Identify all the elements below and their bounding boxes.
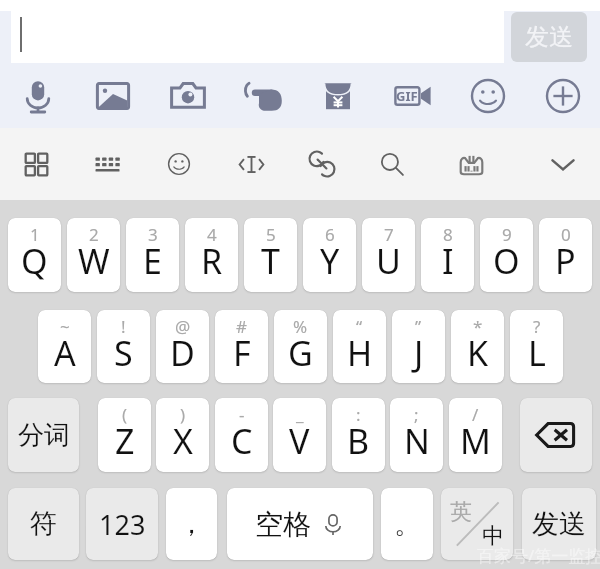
button[interactable]: @ — [156, 310, 209, 383]
staticText: @ — [175, 315, 191, 338]
staticText: 发送 — [532, 507, 586, 541]
button[interactable]: 2 — [67, 218, 120, 292]
button[interactable]: : — [332, 398, 385, 472]
staticText: 5 — [266, 223, 276, 246]
staticText: L — [528, 330, 546, 376]
button[interactable]: ， — [166, 488, 217, 560]
button[interactable]: 6 — [303, 218, 356, 292]
button[interactable]: ? — [510, 310, 563, 383]
button[interactable]: ) — [156, 398, 209, 472]
staticText: 3 — [148, 223, 158, 246]
button[interactable]: Shopping festival — [445, 128, 497, 200]
button[interactable]: 发送 — [511, 12, 587, 62]
staticText: B — [347, 418, 370, 464]
button[interactable]: 123 — [86, 488, 158, 560]
staticText: ; — [414, 403, 419, 426]
button[interactable]: 空格 — [227, 488, 373, 560]
button[interactable]: 7 — [362, 218, 415, 292]
staticText: 空格 — [255, 507, 311, 542]
staticText: Z — [115, 418, 135, 464]
staticText: 中 — [482, 522, 504, 550]
staticText: 7 — [384, 223, 394, 246]
button[interactable]: Switch language — [441, 488, 513, 560]
staticText: 123 — [99, 506, 146, 543]
staticText: 。 — [394, 507, 421, 541]
staticText: E — [143, 238, 162, 284]
button[interactable]: Photo — [75, 63, 150, 128]
staticText: “ — [356, 315, 363, 338]
button[interactable]: 1 — [8, 218, 61, 292]
button[interactable]: GIF — [375, 63, 450, 128]
button[interactable]: Emoji — [153, 128, 205, 200]
staticText: ~ — [60, 315, 70, 338]
staticText: 1 — [30, 223, 40, 246]
staticText: 6 — [325, 223, 335, 246]
button[interactable]: ( — [98, 398, 151, 472]
staticText: W — [78, 238, 110, 284]
button[interactable]: 符 — [8, 488, 79, 560]
button[interactable]: Attachment — [296, 128, 348, 200]
button[interactable]: Gesture — [225, 63, 300, 128]
staticText: H — [347, 330, 373, 376]
button[interactable]: ; — [390, 398, 443, 472]
button[interactable]: Red packet — [300, 63, 375, 128]
button[interactable]: Search — [366, 128, 418, 200]
button[interactable]: 9 — [480, 218, 533, 292]
button[interactable]: 发送 — [522, 488, 596, 560]
button[interactable]: 。 — [381, 488, 433, 560]
button[interactable]: Voice — [0, 63, 75, 128]
button[interactable]: Camera — [150, 63, 225, 128]
staticText: 8 — [443, 223, 453, 246]
button[interactable]: More — [525, 63, 600, 128]
staticText: _ — [296, 403, 304, 426]
button[interactable]: Emoji — [450, 63, 525, 128]
staticText: Q — [21, 238, 48, 284]
button[interactable]: Keyboard layout — [81, 128, 133, 200]
staticText: X — [173, 418, 193, 464]
button[interactable]: * — [451, 310, 504, 383]
staticText: 发送 — [525, 22, 573, 52]
button[interactable]: Apps — [10, 128, 62, 200]
staticText: 4 — [207, 223, 217, 246]
button[interactable]: ~ — [38, 310, 91, 383]
button[interactable]: 3 — [126, 218, 179, 292]
staticText: * — [473, 315, 483, 338]
button[interactable]: ! — [97, 310, 150, 383]
button[interactable]: ” — [392, 310, 445, 383]
button[interactable]: Hide keyboard — [537, 128, 589, 200]
staticText: N — [404, 418, 430, 464]
staticText: S — [114, 330, 133, 376]
button[interactable]: Move cursor — [225, 128, 277, 200]
button[interactable]: 0 — [539, 218, 592, 292]
button[interactable]: 8 — [421, 218, 474, 292]
staticText: ? — [533, 315, 541, 338]
staticText: C — [231, 418, 253, 464]
staticText: T — [261, 238, 280, 284]
button[interactable]: Backspace — [520, 398, 592, 472]
staticText: GIF — [396, 87, 418, 105]
staticText: K — [467, 330, 489, 376]
button[interactable]: - — [215, 398, 268, 472]
staticText: : — [356, 403, 361, 426]
staticText: U — [376, 238, 401, 284]
staticText: 百家号/第一监控 — [477, 544, 600, 567]
staticText: I — [442, 238, 454, 284]
staticText: A — [54, 330, 76, 376]
button[interactable]: _ — [273, 398, 326, 472]
button[interactable]: 分词 — [8, 398, 79, 472]
staticText: - — [239, 403, 245, 426]
button[interactable]: / — [449, 398, 502, 472]
button[interactable]: % — [274, 310, 327, 383]
staticText: ” — [415, 315, 422, 338]
staticText: ! — [121, 315, 126, 338]
staticText: 符 — [30, 507, 57, 541]
button[interactable]: 4 — [185, 218, 238, 292]
staticText: 分词 — [18, 419, 70, 452]
button[interactable]: “ — [333, 310, 386, 383]
staticText: G — [288, 330, 313, 376]
button[interactable]: # — [215, 310, 268, 383]
staticText: J — [414, 330, 424, 376]
staticText: % — [293, 315, 308, 338]
staticText: 9 — [502, 223, 512, 246]
button[interactable]: 5 — [244, 218, 297, 292]
